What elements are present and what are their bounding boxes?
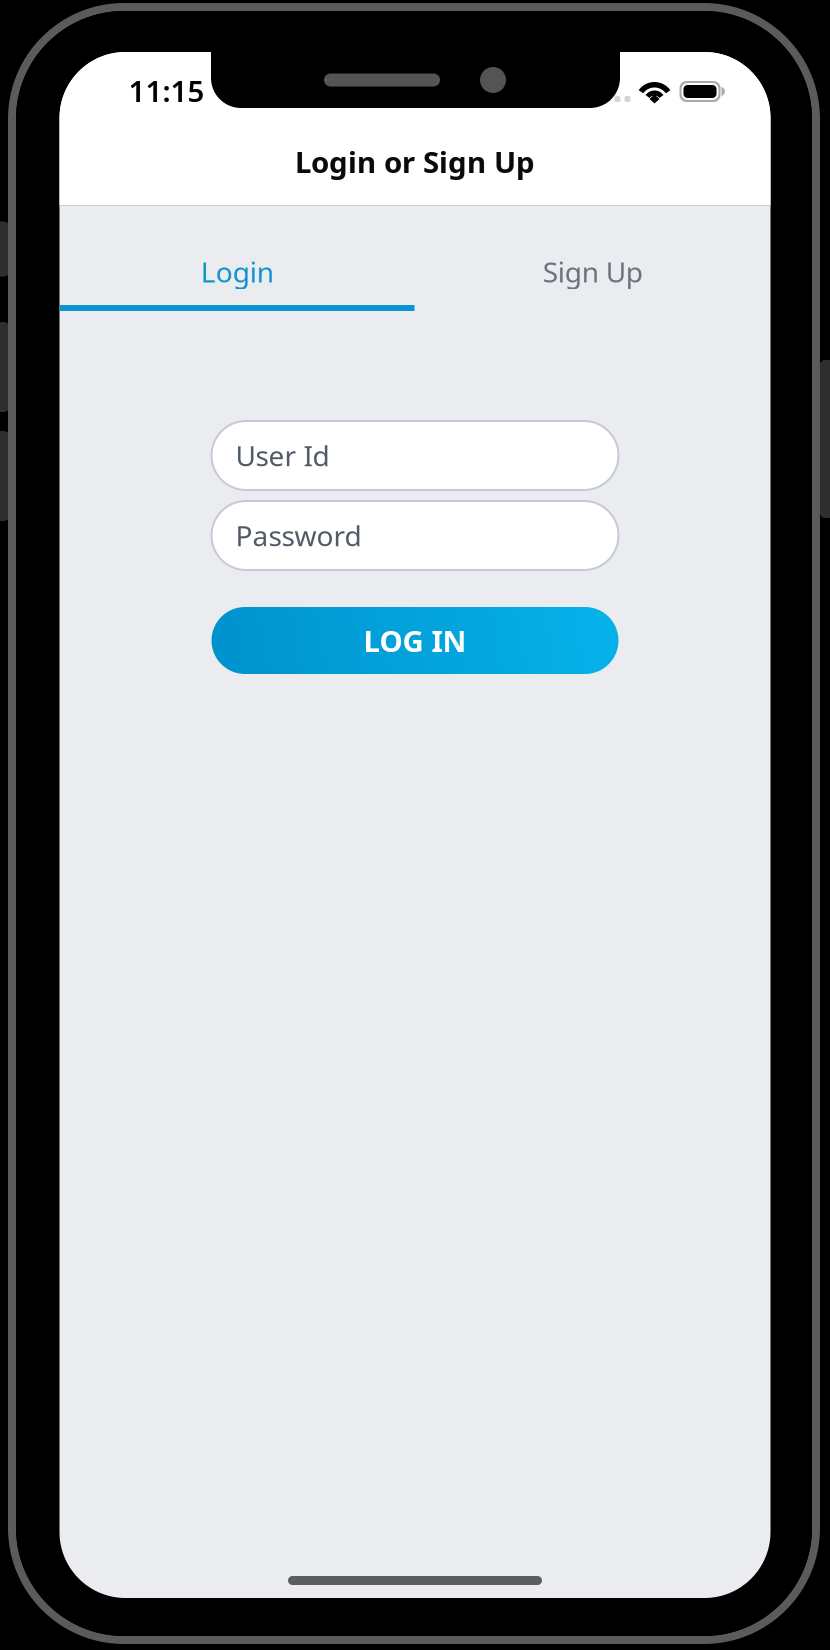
staticText: Login or Sign Up [295, 142, 535, 181]
staticText: Password [235, 517, 361, 554]
staticText: Login [201, 253, 274, 290]
button[interactable]: User Id [211, 421, 618, 490]
staticText: 11:15 [128, 71, 204, 110]
button[interactable]: Login [59, 206, 415, 305]
staticText: LOG IN [363, 621, 466, 660]
button[interactable]: Sign Up [415, 206, 770, 305]
staticText: Sign Up [543, 253, 643, 290]
staticText: User Id [235, 437, 329, 474]
button[interactable]: Password [211, 501, 618, 570]
button[interactable]: LOG IN [211, 607, 618, 674]
